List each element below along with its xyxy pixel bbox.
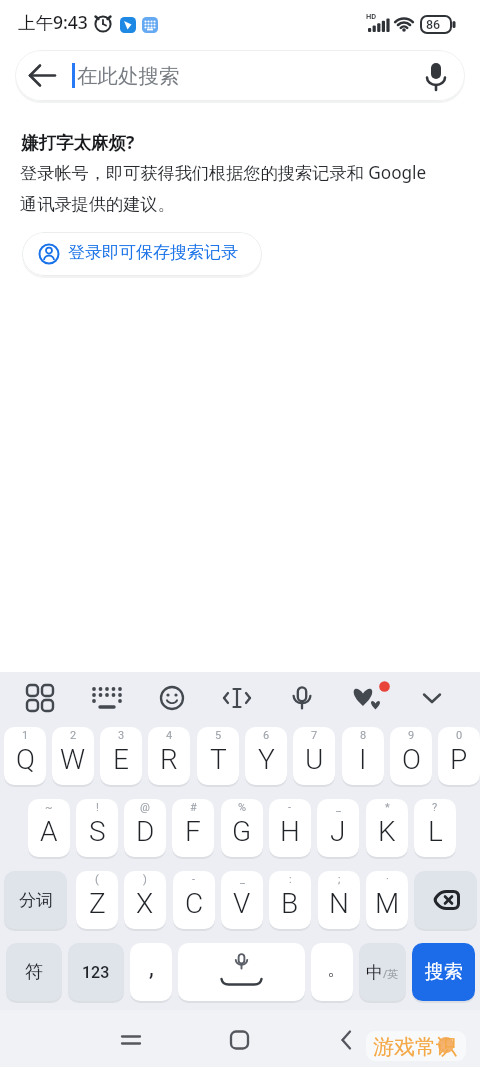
staticText: D [136,815,155,848]
staticText: _ [240,873,245,886]
button[interactable]: , [130,943,172,1001]
button[interactable]: * [366,799,408,857]
staticText: K [378,815,396,848]
button[interactable]: 在此处搜索 [15,50,465,101]
staticText: 登录帐号，即可获得我们根据您的搜索记录和 Google [20,161,427,184]
staticText: ) [143,873,147,886]
staticText: 123 [82,963,110,982]
button[interactable]: ) [124,871,166,929]
button[interactable]: ~ [28,799,70,857]
staticText: 9 [408,729,415,742]
button[interactable]: : [269,871,311,929]
button[interactable]: 登录即可保存搜索记录 [22,232,262,276]
staticText: 中/英 [366,962,399,983]
staticText: · [386,873,389,886]
staticText: U [305,743,324,776]
button[interactable]: 1 [4,727,46,785]
staticText: Y [258,743,275,776]
staticText: P [450,743,468,776]
staticText: 7 [311,729,318,742]
staticText: A [40,815,58,848]
button[interactable]: @ [124,799,166,857]
button[interactable]: ? [414,799,456,857]
staticText: - [192,873,196,886]
staticText: % [238,801,247,814]
button[interactable]: 分词 [4,871,67,929]
staticText: : [289,873,292,886]
button[interactable]: % [221,799,263,857]
button[interactable]: 7 [293,727,335,785]
staticText: 0 [456,729,463,742]
staticText: 4 [166,729,173,742]
staticText: HD [366,12,377,21]
staticText: W [60,743,86,776]
staticText: B [281,887,299,920]
button[interactable]: 中/英 [359,943,406,1001]
button[interactable]: 8 [342,727,384,785]
staticText: T [210,743,227,776]
staticText: Q [16,743,35,776]
staticText: R [160,743,178,776]
button[interactable]: 搜索 [412,943,475,1001]
staticText: 搜索 [425,960,463,984]
button[interactable]: # [172,799,214,857]
staticText: ! [96,801,99,814]
staticText: G [232,815,252,848]
button[interactable]: 0 [438,727,480,785]
staticText: ? [432,801,438,814]
staticText: V [233,887,251,920]
button[interactable]: - [173,871,215,929]
staticText: S [89,815,106,848]
button[interactable]: 符 [6,943,62,1001]
staticText: 5 [215,729,222,742]
staticText: N [329,887,349,920]
staticText: C [185,887,204,920]
staticText: 86 [426,17,441,32]
staticText: 6 [263,729,270,742]
staticText: 分词 [19,890,53,911]
button[interactable] [178,943,305,1001]
button[interactable]: 2 [52,727,94,785]
staticText: @ [140,801,150,814]
staticText: ; [338,873,341,886]
staticText: 登录即可保存搜索记录 [68,242,238,263]
staticText: O [402,743,421,776]
button[interactable]: ! [76,799,118,857]
button[interactable]: 123 [68,943,124,1001]
staticText: 符 [25,961,43,984]
staticText: H [280,815,300,848]
button[interactable]: ( [76,871,118,929]
staticText: 8 [360,729,367,742]
button[interactable]: · [366,871,408,929]
staticText: I [359,743,367,776]
staticText: 嫌打字太麻烦? [21,130,135,154]
staticText: X [136,887,154,920]
staticText: # [190,801,197,814]
staticText: * [385,801,390,814]
staticText: M [375,887,400,920]
button[interactable]: 5 [197,727,239,785]
staticText: - [288,801,292,814]
button[interactable]: _ [317,799,359,857]
staticText: , [149,954,154,982]
button[interactable]: _ [221,871,263,929]
button[interactable] [414,871,477,929]
staticText: J [330,815,346,848]
staticText: ( [95,873,99,886]
staticText: L [428,815,443,848]
button[interactable]: 。 [311,943,353,1001]
staticText: 3 [118,729,125,742]
staticText: ~ [45,801,53,814]
staticText: 1 [22,729,29,742]
staticText: 上午9:43 [18,10,88,34]
staticText: 通讯录提供的建议。 [20,193,175,215]
button[interactable]: - [269,799,311,857]
button[interactable]: 4 [148,727,190,785]
button[interactable]: 3 [100,727,142,785]
button[interactable]: 9 [390,727,432,785]
button[interactable]: 6 [245,727,287,785]
staticText: 2 [70,729,77,742]
staticText: _ [336,801,341,814]
staticText: 游戏常识 [373,1034,457,1060]
button[interactable]: ; [318,871,360,929]
